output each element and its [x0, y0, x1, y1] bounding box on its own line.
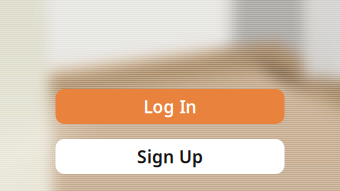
- staticText: Sign Up: [137, 145, 203, 168]
- staticText: Log In: [143, 95, 196, 118]
- button[interactable]: Log In: [55, 89, 284, 124]
- button[interactable]: Sign Up: [55, 139, 284, 174]
